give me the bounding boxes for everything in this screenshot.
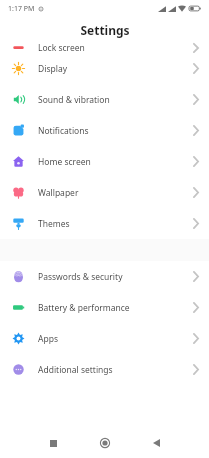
staticText: Themes: [38, 218, 70, 230]
button[interactable]: Themes: [0, 208, 209, 239]
staticText: Sound & vibration: [38, 94, 110, 106]
staticText: Apps: [38, 333, 58, 345]
button[interactable]: Lock screen: [0, 42, 209, 53]
button[interactable]: Additional settings: [0, 354, 209, 385]
staticText: Notifications: [38, 125, 89, 137]
staticText: 1:17 PM: [8, 4, 35, 14]
button[interactable]: Home screen: [0, 146, 209, 177]
button[interactable]: Back: [145, 432, 167, 454]
button[interactable]: Apps: [0, 323, 209, 354]
button[interactable]: Home: [94, 432, 116, 454]
staticText: Home screen: [38, 156, 91, 168]
staticText: Passwords & security: [38, 271, 123, 283]
button[interactable]: Passwords & security: [0, 261, 209, 292]
staticText: Settings: [80, 22, 130, 38]
button[interactable]: Battery & performance: [0, 292, 209, 323]
staticText: Additional settings: [38, 364, 113, 376]
staticText: Lock screen: [38, 42, 85, 53]
staticText: Battery & performance: [38, 302, 130, 314]
button[interactable]: Recents: [42, 432, 64, 454]
button[interactable]: Display: [0, 53, 209, 84]
staticText: Display: [38, 63, 67, 75]
button[interactable]: Wallpaper: [0, 177, 209, 208]
staticText: Wallpaper: [38, 187, 79, 199]
button[interactable]: Notifications: [0, 115, 209, 146]
button[interactable]: Sound & vibration: [0, 84, 209, 115]
